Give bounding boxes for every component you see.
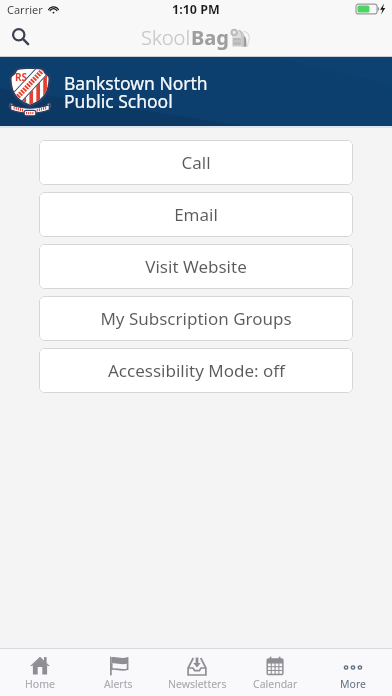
button[interactable]: Alerts [79, 649, 158, 696]
staticText: Skool [141, 24, 191, 51]
button[interactable]: More [314, 649, 392, 696]
staticText: Accessibility Mode: off [108, 359, 285, 382]
button[interactable]: Newsletters [158, 649, 236, 696]
button[interactable]: RS [0, 57, 392, 126]
staticText: Alerts [104, 677, 133, 691]
staticText: 1:10 PM [172, 1, 220, 18]
staticText: Home [25, 677, 55, 691]
staticText: Calendar [253, 677, 298, 691]
staticText: Email [174, 203, 218, 226]
button[interactable]: Accessibility Mode: off [39, 348, 353, 393]
staticText: Call [181, 151, 211, 174]
button[interactable]: Email [39, 192, 353, 237]
button[interactable]: Visit Website [39, 244, 353, 289]
staticText: My Subscription Groups [100, 307, 292, 330]
button[interactable]: Calendar [236, 649, 314, 696]
staticText: More [340, 677, 366, 691]
staticText: Bag [191, 24, 229, 51]
button[interactable]: My Subscription Groups [39, 296, 353, 341]
staticText: Visit Website [145, 255, 247, 278]
staticText: RS [15, 70, 28, 84]
staticText: Carrier [7, 2, 43, 17]
staticText: Newsletters [168, 677, 227, 691]
button[interactable]: Search [0, 16, 40, 55]
button[interactable]: Home [0, 649, 79, 696]
staticText: Bankstown North Public School [64, 71, 208, 113]
button[interactable]: Call [39, 140, 353, 185]
